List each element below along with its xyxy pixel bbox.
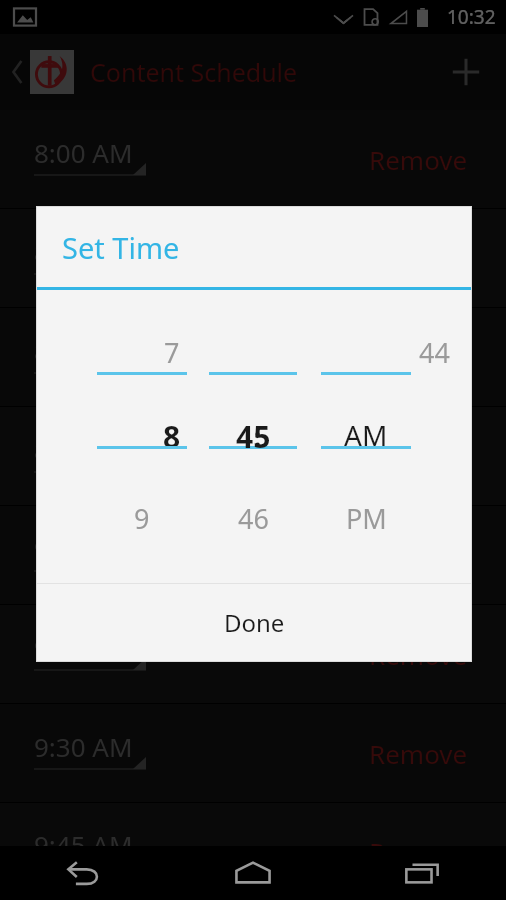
button[interactable]: 9:30 AM xyxy=(34,729,146,778)
button[interactable]: Home xyxy=(168,846,337,900)
button[interactable]: Remove xyxy=(365,336,472,379)
button[interactable]: Remove xyxy=(365,830,472,873)
button[interactable]: 9:30 AM xyxy=(0,704,506,802)
staticText: Content Schedule xyxy=(90,55,298,89)
staticText: 8:00 AM xyxy=(34,135,133,170)
staticText: Remove xyxy=(369,637,468,672)
button[interactable]: 9:00 AM xyxy=(34,531,146,580)
staticText: Remove xyxy=(369,439,468,474)
staticText: 8:15 AM xyxy=(34,234,133,269)
staticText: Remove xyxy=(369,736,468,771)
staticText: 9 xyxy=(134,500,150,536)
staticText: AM xyxy=(344,416,388,452)
button[interactable]: 9:15 AM xyxy=(0,605,506,703)
button[interactable]: Navigate up xyxy=(6,34,80,110)
button[interactable]: Done xyxy=(37,584,471,661)
button[interactable]: 8:30 AM xyxy=(0,308,506,406)
button[interactable]: 8:15 AM xyxy=(34,234,146,283)
button[interactable]: 8:15 AM xyxy=(0,209,506,307)
staticText: 9:15 AM xyxy=(34,630,133,665)
staticText: 44 xyxy=(419,334,450,371)
button[interactable]: Add schedule entry xyxy=(440,46,492,98)
button[interactable]: Remove xyxy=(365,435,472,478)
button[interactable]: Remove xyxy=(365,732,472,775)
button[interactable]: 9:45 AM xyxy=(0,803,506,900)
button[interactable]: 8:30 AM xyxy=(34,333,146,382)
staticText: 8:30 AM xyxy=(34,333,133,368)
staticText: Remove xyxy=(369,142,468,177)
staticText: 8 xyxy=(163,416,181,456)
button[interactable]: 9:00 AM xyxy=(0,506,506,604)
button[interactable]: 9:45 AM xyxy=(34,827,146,876)
button[interactable]: 9:15 AM xyxy=(34,630,146,679)
staticText: Remove xyxy=(369,340,468,375)
staticText: : xyxy=(254,419,262,454)
staticText: 46 xyxy=(238,500,269,536)
button[interactable]: 8:00 AM xyxy=(0,110,506,208)
button[interactable]: Remove xyxy=(365,138,472,181)
staticText: Set Time xyxy=(62,228,180,267)
staticText: 7 xyxy=(164,334,180,371)
staticText: Remove xyxy=(369,834,468,869)
button[interactable]: 8:45 AM xyxy=(34,432,146,481)
staticText: 10:32 xyxy=(447,4,496,30)
staticText: 9:45 AM xyxy=(34,827,133,862)
button[interactable]: Remove xyxy=(365,633,472,676)
staticText: Done xyxy=(224,606,285,639)
button[interactable]: Back xyxy=(0,846,168,900)
button[interactable]: 8:45 AM xyxy=(0,407,506,505)
staticText: 45 xyxy=(236,416,271,452)
button[interactable]: Recent apps xyxy=(337,846,506,900)
button[interactable]: 8:00 AM xyxy=(34,135,146,184)
staticText: 9:00 AM xyxy=(34,531,133,566)
staticText: 8:45 AM xyxy=(34,432,133,467)
staticText: 9:30 AM xyxy=(34,729,133,764)
staticText: PM xyxy=(346,500,387,536)
